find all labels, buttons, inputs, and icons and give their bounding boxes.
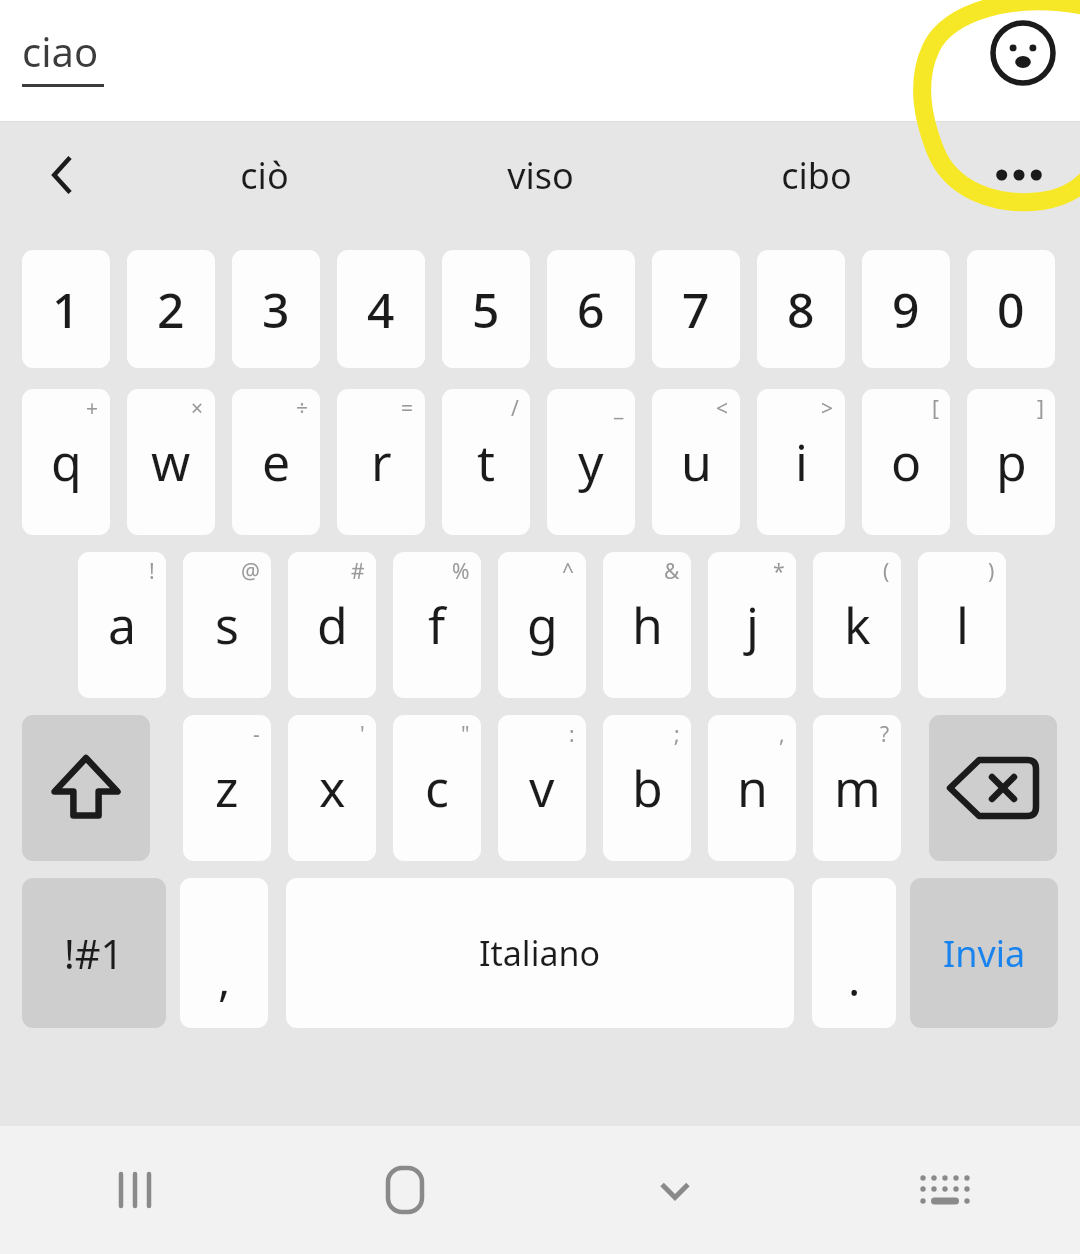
staticText: w <box>151 428 191 496</box>
staticText: b <box>632 754 663 822</box>
button[interactable]: : <box>498 715 586 861</box>
button[interactable]: Recent apps <box>0 1126 270 1254</box>
button[interactable]: ÷ <box>232 389 320 535</box>
button[interactable]: 9 <box>862 250 950 368</box>
button[interactable]: viso <box>402 122 678 228</box>
staticText: ÷ <box>296 394 309 423</box>
staticText: " <box>461 720 470 749</box>
staticText: z <box>215 754 239 822</box>
staticText: 3 <box>262 277 290 342</box>
staticText: 1 <box>52 277 80 342</box>
staticText: 4 <box>367 277 395 342</box>
staticText: 9 <box>892 277 920 342</box>
staticText: 7 <box>682 277 710 342</box>
button[interactable]: Shift <box>22 715 150 861</box>
staticText: ciao <box>22 24 99 78</box>
button[interactable]: - <box>183 715 271 861</box>
staticText: g <box>527 591 558 659</box>
button[interactable]: ^ <box>498 552 586 698</box>
button[interactable]: 2 <box>127 250 215 368</box>
button[interactable]: = <box>337 389 425 535</box>
staticText: s <box>215 591 239 659</box>
button[interactable]: 5 <box>442 250 530 368</box>
staticText: * <box>773 557 785 586</box>
staticText: 8 <box>787 277 815 342</box>
staticText: q <box>51 428 82 496</box>
staticText: ) <box>988 557 995 586</box>
button[interactable]: [ <box>862 389 950 535</box>
button[interactable]: × <box>127 389 215 535</box>
staticText: y <box>578 428 604 496</box>
button[interactable]: % <box>393 552 481 698</box>
button[interactable]: cibo <box>678 122 954 228</box>
button[interactable]: & <box>603 552 691 698</box>
staticText: Italiano <box>479 930 601 976</box>
button[interactable]: < <box>652 389 740 535</box>
staticText: d <box>317 591 348 659</box>
button[interactable]: ) <box>918 552 1006 698</box>
staticText: l <box>956 591 969 659</box>
staticText: x <box>319 754 346 822</box>
staticText: f <box>428 591 446 659</box>
button[interactable]: . <box>812 878 896 1028</box>
button[interactable]: > <box>757 389 845 535</box>
staticText: i <box>795 428 808 496</box>
button[interactable]: , <box>180 878 268 1028</box>
button[interactable]: * <box>708 552 796 698</box>
staticText: ' <box>360 720 365 749</box>
button[interactable]: Backspace <box>929 715 1057 861</box>
staticText: . <box>848 947 861 1010</box>
button[interactable]: 7 <box>652 250 740 368</box>
button[interactable]: 4 <box>337 250 425 368</box>
button[interactable]: @ <box>183 552 271 698</box>
button[interactable]: " <box>393 715 481 861</box>
button[interactable]: Hide keyboard <box>540 1126 810 1254</box>
staticText: × <box>191 394 204 423</box>
button[interactable]: 6 <box>547 250 635 368</box>
staticText: 0 <box>997 277 1025 342</box>
button[interactable]: ( <box>813 552 901 698</box>
staticText: + <box>86 394 99 423</box>
staticText: 5 <box>472 277 500 342</box>
button[interactable]: / <box>442 389 530 535</box>
button[interactable]: More options <box>974 130 1064 220</box>
button[interactable]: , <box>708 715 796 861</box>
staticText: @ <box>241 557 260 586</box>
staticText: , <box>779 720 785 749</box>
staticText: : <box>569 720 575 749</box>
button[interactable]: ciò <box>126 122 402 228</box>
button[interactable]: Home <box>270 1126 540 1254</box>
staticText: > <box>821 394 834 423</box>
button[interactable]: 3 <box>232 250 320 368</box>
staticText: ( <box>883 557 890 586</box>
staticText: ciò <box>240 151 289 200</box>
button[interactable]: 1 <box>22 250 110 368</box>
button[interactable]: ' <box>288 715 376 861</box>
button[interactable]: 8 <box>757 250 845 368</box>
button[interactable]: Invia <box>910 878 1058 1028</box>
staticText: e <box>262 428 291 496</box>
staticText: p <box>996 428 1027 496</box>
button[interactable]: _ <box>547 389 635 535</box>
staticText: = <box>401 394 414 423</box>
button[interactable]: + <box>22 389 110 535</box>
button[interactable]: Previous suggestions <box>18 130 108 220</box>
button[interactable]: ] <box>967 389 1055 535</box>
button[interactable]: Italiano <box>286 878 794 1028</box>
staticText: & <box>664 557 680 586</box>
staticText: c <box>425 754 449 822</box>
staticText: ] <box>1037 394 1044 423</box>
button[interactable]: ? <box>813 715 901 861</box>
button[interactable]: ! <box>78 552 166 698</box>
staticText: ; <box>674 720 680 749</box>
button[interactable]: ; <box>603 715 691 861</box>
button[interactable]: Switch keyboard <box>810 1126 1080 1254</box>
button[interactable]: Emoji <box>984 14 1062 92</box>
button[interactable]: # <box>288 552 376 698</box>
button[interactable]: 0 <box>967 250 1055 368</box>
staticText: cibo <box>781 151 852 200</box>
button[interactable]: !#1 <box>22 878 166 1028</box>
staticText: v <box>529 754 555 822</box>
staticText: j <box>746 591 759 659</box>
staticText: n <box>737 754 768 822</box>
